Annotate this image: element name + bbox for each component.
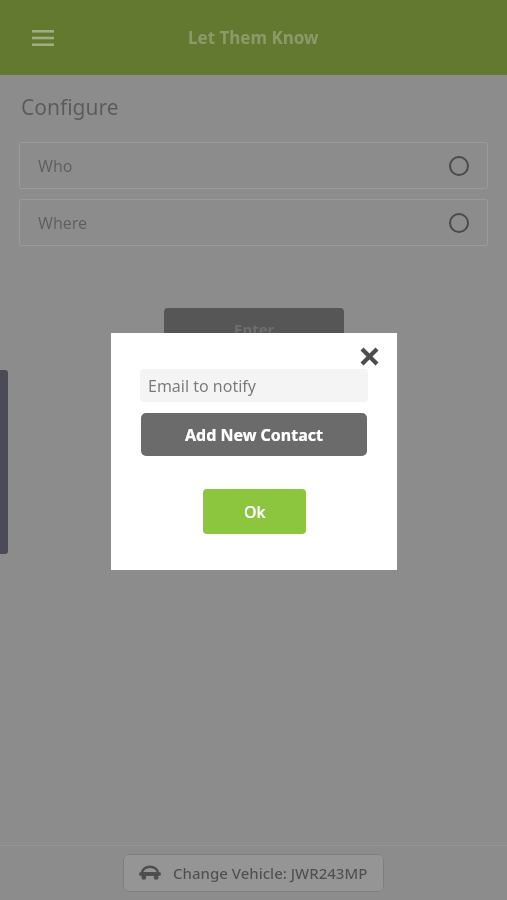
staticText: Who: [38, 155, 73, 177]
staticText: Change Vehicle: JWR243MP: [173, 863, 368, 883]
staticText: Ok: [244, 501, 266, 523]
button[interactable]: Enter: [164, 308, 344, 350]
button[interactable]: Change Vehicle: JWR243MP: [123, 854, 384, 892]
staticText: Where: [38, 212, 88, 234]
button[interactable]: Who: [19, 142, 488, 189]
staticText: Add New Contact: [185, 424, 323, 446]
button[interactable]: Open navigation menu: [24, 19, 62, 57]
button[interactable]: Ok: [203, 489, 306, 534]
staticText: Enter: [234, 319, 275, 339]
button[interactable]: Close: [352, 339, 386, 373]
staticText: Configure: [21, 93, 119, 122]
button[interactable]: Where: [19, 199, 488, 246]
button[interactable]: Add New Contact: [141, 413, 367, 456]
staticText: Let Them Know: [188, 26, 319, 49]
button[interactable]: Email to notify: [140, 369, 368, 402]
staticText: Email to notify: [148, 375, 257, 397]
